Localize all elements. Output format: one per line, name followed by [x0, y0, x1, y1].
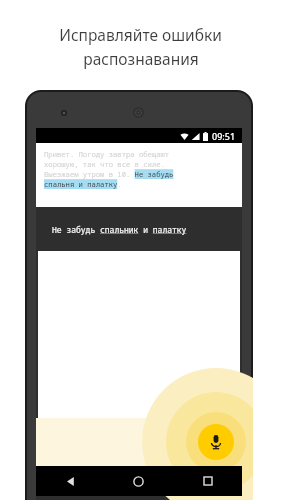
staticText: Выезжаем утром в 10. Не забудь — [44, 169, 174, 179]
staticText: распознавания — [83, 48, 199, 69]
button[interactable]: Home — [104, 466, 173, 496]
button[interactable]: Back — [36, 466, 104, 496]
staticText: Не забудь спальник и палатку — [52, 224, 187, 235]
staticText: Исправляйте ошибки — [59, 24, 222, 45]
staticText: хорошую, так что все в силе. — [44, 159, 165, 169]
staticText: Привет. Погоду завтра обещают — [44, 149, 170, 159]
button[interactable]: Recents — [173, 466, 242, 496]
button[interactable]: Voice input — [198, 424, 234, 460]
staticText: 09:51 — [212, 130, 236, 142]
staticText: спальня и палатку. — [44, 179, 122, 189]
button[interactable]: Не забудь спальник и палатку — [36, 207, 242, 251]
